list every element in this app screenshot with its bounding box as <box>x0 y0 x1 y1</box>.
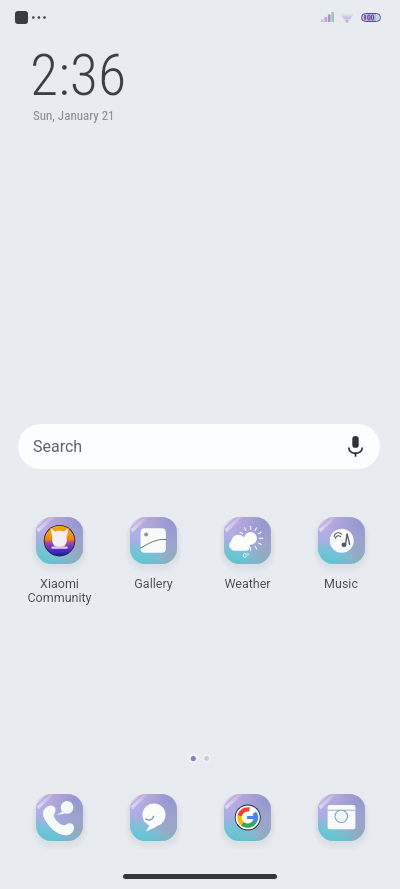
staticText: Music <box>324 576 358 591</box>
button[interactable]: Phone <box>12 790 106 845</box>
button[interactable]: Google <box>200 790 294 845</box>
staticText: 2:36 <box>30 41 127 109</box>
button[interactable]: Search <box>18 424 380 469</box>
staticText: Search <box>33 437 83 456</box>
staticText: Weather <box>224 576 271 591</box>
other: Voice search <box>348 436 363 457</box>
button[interactable]: Gallery <box>106 513 200 591</box>
staticText: Gallery <box>134 576 173 591</box>
button[interactable]: Messages <box>106 790 200 845</box>
staticText: Xiaomi Community <box>27 576 92 605</box>
button[interactable]: Music <box>294 513 388 591</box>
button[interactable]: Camera <box>294 790 388 845</box>
button[interactable]: Xiaomi Community <box>12 513 106 605</box>
staticText: Sun, January 21 <box>33 108 115 123</box>
button[interactable]: Weather <box>200 513 294 591</box>
